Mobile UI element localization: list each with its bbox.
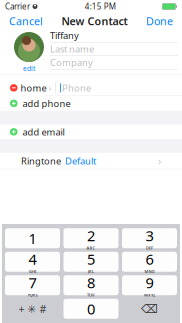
staticText: 1 <box>28 228 36 248</box>
staticText: MNO <box>144 269 154 274</box>
button[interactable]: 5 <box>63 252 118 272</box>
staticText: 7 <box>28 273 36 292</box>
button[interactable]: add phone <box>0 96 182 111</box>
staticText: Phone <box>62 82 91 94</box>
button[interactable]: 4 <box>5 252 60 272</box>
staticText: edit <box>23 64 35 73</box>
button[interactable]: edit <box>20 63 38 74</box>
button[interactable]: 1 <box>5 228 60 248</box>
staticText: Tiffany <box>50 29 79 42</box>
button[interactable]: 7 <box>5 275 60 295</box>
button[interactable]: Delete <box>122 299 177 319</box>
button[interactable]: 2 <box>63 228 118 248</box>
button[interactable]: 9 <box>122 275 177 295</box>
staticText: add email <box>22 126 64 138</box>
button[interactable]: home <box>20 79 51 97</box>
staticText: 3 <box>145 226 153 245</box>
staticText: WXYZ <box>144 292 155 298</box>
staticText: ⌫ <box>141 302 158 315</box>
staticText: + ✳ # <box>18 302 46 316</box>
button[interactable]: Plus star pound <box>5 299 60 319</box>
staticText: › <box>158 154 161 168</box>
staticText: home <box>20 82 46 94</box>
staticText: New Contact <box>61 14 127 28</box>
button[interactable]: Ringtone <box>0 153 182 169</box>
staticText: 8 <box>87 273 95 292</box>
staticText: add phone <box>22 97 70 110</box>
staticText: 9 <box>145 273 153 292</box>
button[interactable]: 0 <box>63 299 118 319</box>
staticText: 4:15 PM <box>85 1 116 12</box>
button[interactable]: 3 <box>122 228 177 248</box>
staticText: Cancel <box>9 14 43 28</box>
staticText: Ringtone <box>21 155 61 167</box>
staticText: Default <box>65 155 96 167</box>
staticText: Company <box>50 56 93 69</box>
staticText: JKL <box>88 269 94 274</box>
staticText: 0 <box>87 299 95 318</box>
button[interactable]: Cancel <box>3 10 49 32</box>
staticText: ABC <box>86 245 95 251</box>
button[interactable]: Done <box>140 10 179 32</box>
staticText: Done <box>146 14 173 28</box>
staticText: PQRS <box>27 292 37 298</box>
staticText: 4 <box>28 249 36 269</box>
staticText: GHI <box>29 269 36 274</box>
button[interactable]: Remove phone <box>7 81 20 95</box>
staticText: Last name <box>50 43 94 55</box>
button[interactable]: 8 <box>63 275 118 295</box>
staticText: Carrier <box>5 1 30 12</box>
staticText: 6 <box>145 249 153 269</box>
button[interactable]: 6 <box>122 252 177 272</box>
staticText: TUV <box>87 292 95 298</box>
staticText: DEF <box>146 245 153 251</box>
staticText: 2 <box>87 226 95 245</box>
button[interactable]: add email <box>0 124 182 139</box>
staticText: 5 <box>87 249 95 269</box>
staticText: › <box>48 82 51 94</box>
